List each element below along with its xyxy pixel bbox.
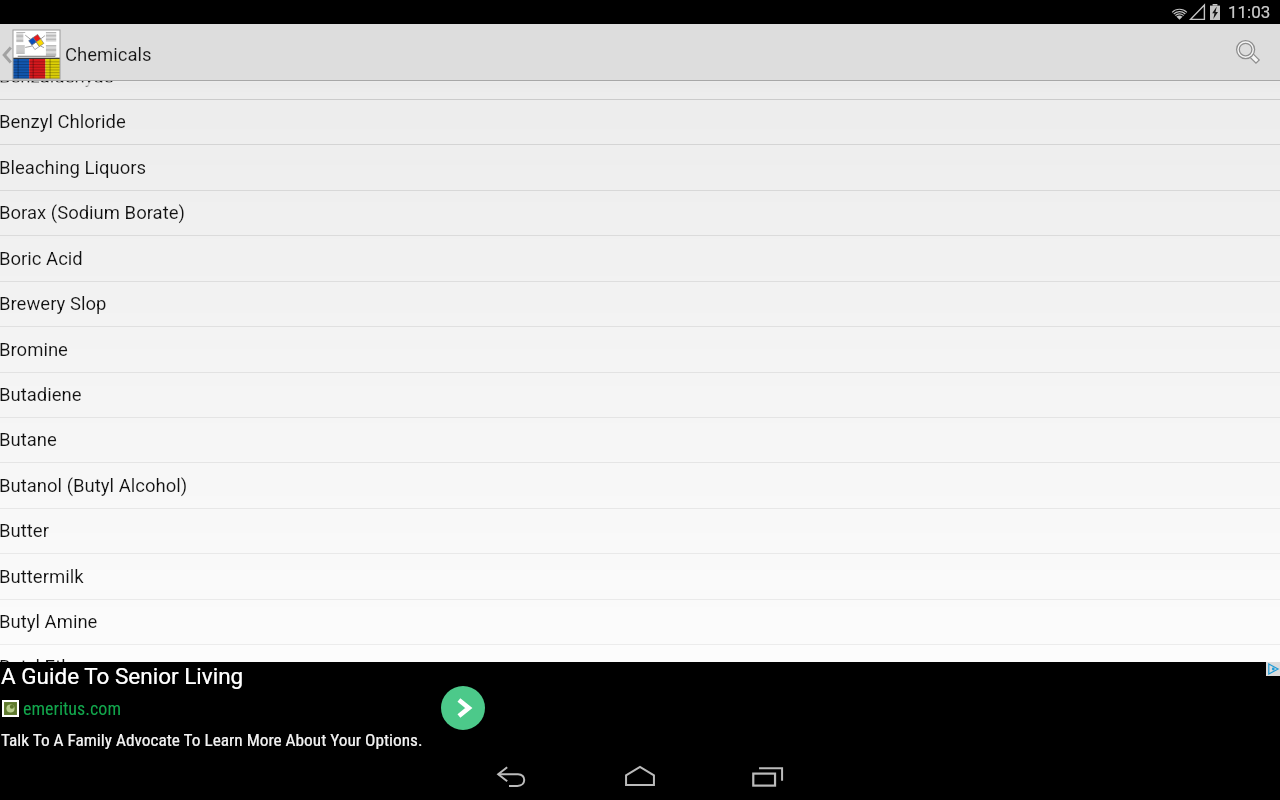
button[interactable]: Boric Acid [0,236,1280,282]
staticText: Bromine [0,339,68,361]
button[interactable]: Butter [0,508,1280,554]
button[interactable]: Benzyl Chloride [0,99,1280,145]
button[interactable]: Butane [0,417,1280,463]
button[interactable]: Bromine [0,327,1280,373]
staticText: Bleaching Liquors [0,157,147,179]
button[interactable]: Open advertisement [441,686,485,730]
staticText: Brewery Slop [0,293,107,315]
button[interactable]: Search [1221,25,1277,81]
staticText: Butanol (Butyl Alcohol) [0,475,188,497]
button[interactable]: Recent apps [734,752,802,800]
button[interactable]: Borax (Sodium Borate) [0,190,1280,236]
staticText: Boric Acid [0,248,83,270]
button[interactable]: Bleaching Liquors [0,145,1280,191]
button[interactable]: Buttermilk [0,554,1280,600]
button[interactable]: Butyl Ether [0,644,1280,662]
button[interactable]: Home [606,752,674,800]
staticText: Buttermilk [0,566,84,588]
staticText: Benzaldehyde [0,66,114,88]
staticText: A Guide To Senior Living [1,663,244,689]
staticText: Chemicals [65,44,152,66]
staticText: Benzyl Chloride [0,111,126,133]
button[interactable]: Benzaldehyde [0,54,1280,100]
button[interactable]: Butadiene [0,372,1280,418]
button[interactable]: Back [478,752,546,800]
staticText: Butyl Amine [0,611,98,633]
button[interactable]: Brewery Slop [0,281,1280,327]
staticText: emeritus.com [23,698,121,719]
staticText: Butyl Ether [0,656,88,662]
staticText: Butane [0,429,57,451]
button[interactable]: Navigate up [0,30,152,79]
staticText: Butadiene [0,384,82,406]
staticText: Borax (Sodium Borate) [0,202,185,224]
button[interactable]: Ad choices [1266,662,1280,676]
staticText: Butter [0,520,49,542]
button[interactable]: A Guide To Senior Living [0,662,1280,752]
staticText: 11:03 [1228,2,1271,22]
staticText: Talk To A Family Advocate To Learn More … [1,730,423,750]
button[interactable]: Butanol (Butyl Alcohol) [0,463,1280,509]
button[interactable]: Butyl Amine [0,599,1280,645]
